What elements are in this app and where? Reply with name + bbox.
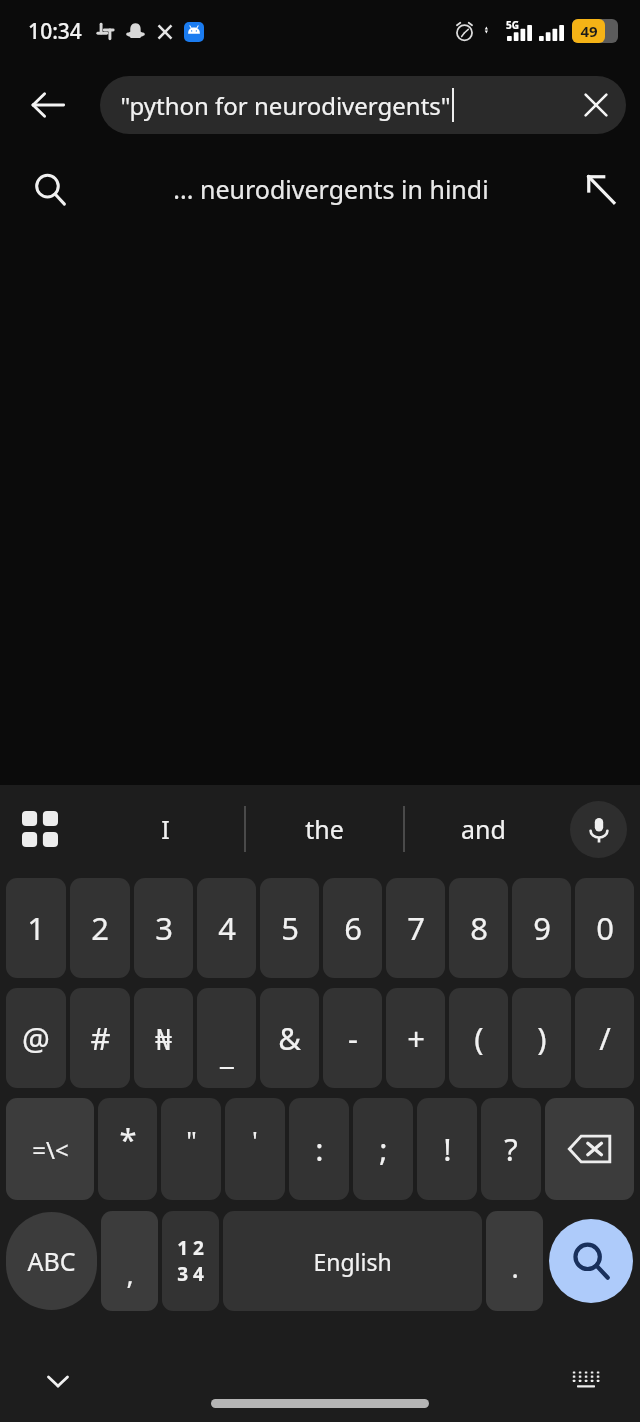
button[interactable]: "python for neurodivergents" [100, 76, 626, 134]
button[interactable]: ... neurodivergents in hindi [0, 148, 640, 230]
button[interactable]: - [323, 988, 382, 1088]
staticText: ' [252, 1122, 258, 1157]
staticText: ) [537, 1017, 547, 1059]
staticText: _ [220, 1031, 234, 1073]
staticText: # [90, 1017, 111, 1059]
button[interactable]: # [70, 988, 130, 1088]
button[interactable]: @ [6, 988, 66, 1088]
button[interactable]: , [101, 1211, 158, 1311]
staticText: ... neurodivergents in hindi [100, 172, 562, 206]
staticText: 2 [91, 907, 109, 949]
staticText: =\< [32, 1133, 69, 1166]
staticText: 6 [344, 907, 362, 949]
staticText: 0 [596, 907, 614, 949]
staticText: 4 [218, 907, 236, 949]
button[interactable]: 3 [134, 878, 193, 978]
button[interactable]: 8 [449, 878, 508, 978]
staticText: " [186, 1122, 197, 1157]
staticText: ₦ [155, 1019, 172, 1058]
staticText: ABC [27, 1244, 76, 1278]
staticText: 9 [533, 907, 551, 949]
button[interactable]: ? [481, 1098, 541, 1200]
staticText: 8 [470, 907, 488, 949]
staticText: ! [443, 1128, 452, 1170]
staticText: ; [379, 1128, 388, 1170]
staticText: and [461, 812, 506, 846]
staticText: "python for neurodivergents" [120, 89, 451, 122]
button[interactable]: the [246, 785, 403, 873]
button[interactable]: 0 [575, 878, 634, 978]
button[interactable]: . [486, 1211, 543, 1311]
staticText: * [119, 1118, 137, 1160]
button[interactable]: Switch keyboard [558, 1353, 614, 1409]
button[interactable]: Back [12, 69, 84, 141]
button[interactable]: ; [353, 1098, 413, 1200]
button[interactable]: / [575, 988, 634, 1088]
button[interactable]: _ [197, 988, 256, 1088]
staticText: 7 [407, 907, 425, 949]
button[interactable]: + [386, 988, 445, 1088]
button[interactable]: 1 [6, 878, 66, 978]
staticText: ( [474, 1017, 484, 1059]
staticText: / [599, 1017, 611, 1059]
staticText: 1 2 [177, 1235, 204, 1261]
staticText: + [407, 1017, 425, 1059]
button[interactable]: Hide keyboard [30, 1353, 86, 1409]
staticText: 5 [281, 907, 299, 949]
button[interactable]: 9 [512, 878, 571, 978]
staticText: . [511, 1249, 519, 1286]
button[interactable]: : [289, 1098, 349, 1200]
button[interactable]: 7 [386, 878, 445, 978]
staticText: 1 [27, 907, 45, 949]
button[interactable]: English [223, 1211, 482, 1311]
button[interactable]: Voice input [570, 801, 627, 858]
button[interactable]: I [86, 785, 244, 873]
staticText: 49 [580, 21, 598, 41]
button[interactable]: Insert suggestion [562, 148, 640, 230]
staticText: ? [504, 1128, 518, 1170]
button[interactable]: Numbers [162, 1211, 219, 1311]
button[interactable]: =\< [6, 1098, 94, 1200]
button[interactable]: Clear search [568, 77, 624, 133]
button[interactable]: 6 [323, 878, 382, 978]
staticText: 5G [506, 18, 519, 32]
staticText: the [305, 812, 344, 846]
button[interactable]: ' [225, 1098, 285, 1200]
button[interactable]: ABC [6, 1212, 97, 1310]
button[interactable]: & [260, 988, 319, 1088]
button[interactable]: ( [449, 988, 508, 1088]
staticText: : [315, 1128, 324, 1170]
button[interactable]: Toolbar [8, 797, 72, 861]
button[interactable]: and [405, 785, 562, 873]
button[interactable]: * [98, 1098, 157, 1200]
button[interactable]: 4 [197, 878, 256, 978]
staticText: , [126, 1255, 134, 1292]
button[interactable]: " [161, 1098, 221, 1200]
staticText: - [348, 1017, 358, 1059]
button[interactable]: ! [417, 1098, 477, 1200]
button[interactable]: Backspace [545, 1098, 634, 1200]
button[interactable]: ) [512, 988, 571, 1088]
staticText: & [278, 1017, 301, 1059]
button[interactable]: 5 [260, 878, 319, 978]
staticText: English [313, 1246, 392, 1277]
button[interactable]: Search [549, 1219, 633, 1303]
staticText: 3 [155, 907, 173, 949]
staticText: 3 4 [177, 1261, 204, 1287]
button[interactable]: 2 [70, 878, 130, 978]
staticText: I [161, 812, 170, 846]
staticText: 10:34 [28, 17, 82, 46]
staticText: @ [22, 1017, 50, 1059]
button[interactable]: ₦ [134, 988, 193, 1088]
